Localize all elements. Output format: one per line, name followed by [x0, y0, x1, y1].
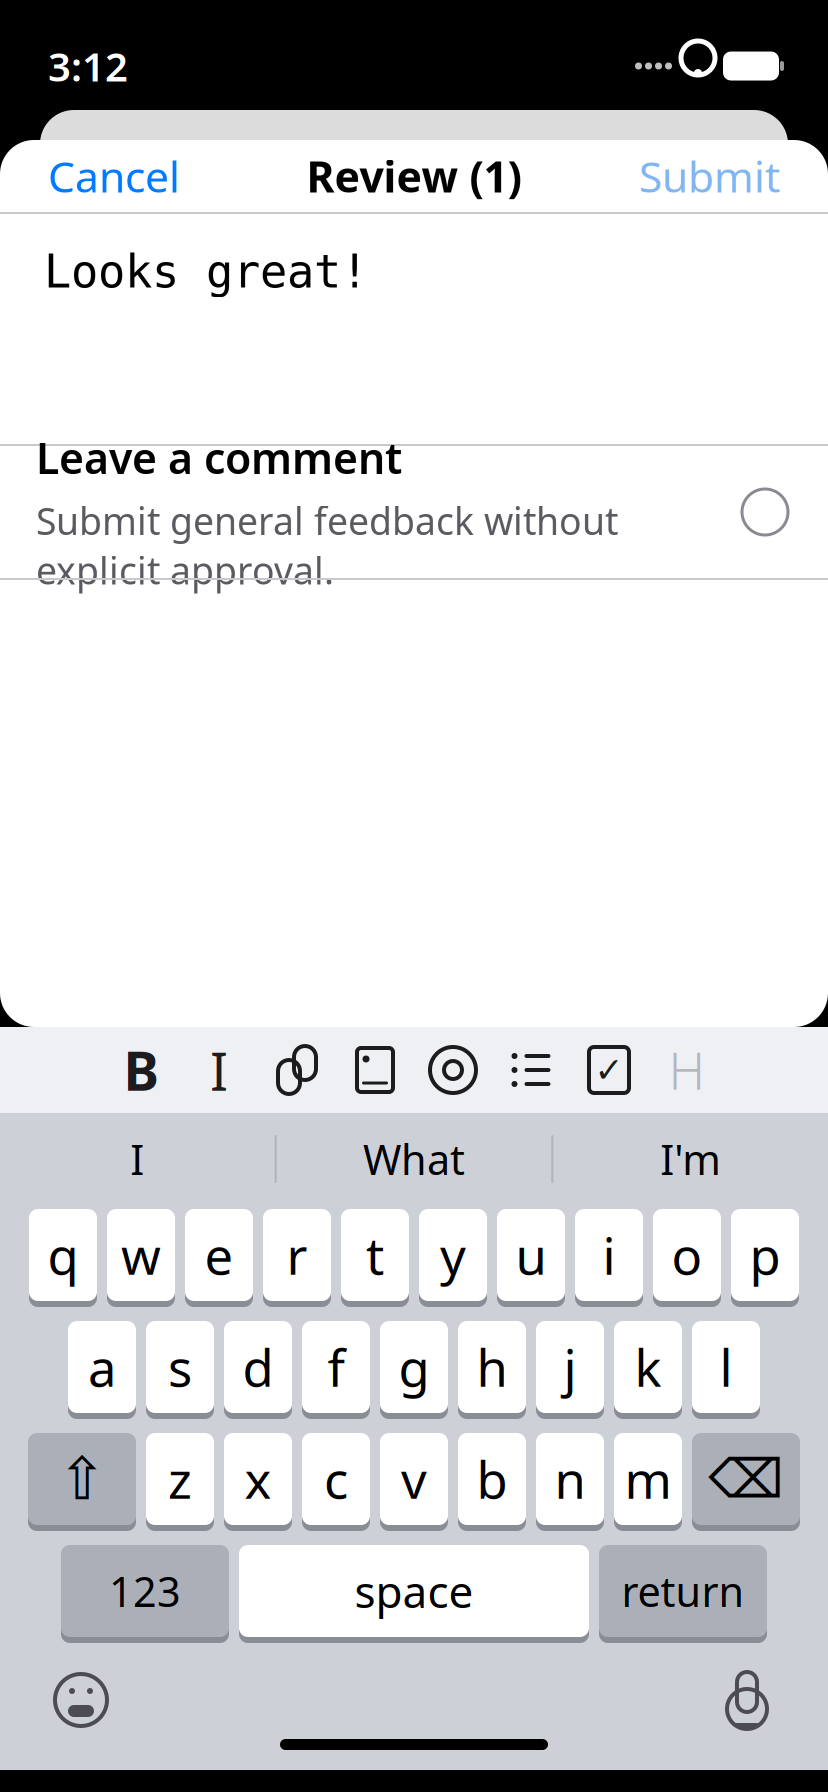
button[interactable]: q — [29, 1209, 97, 1307]
button[interactable]: Cancel — [36, 138, 192, 214]
button[interactable]: c — [302, 1433, 370, 1531]
staticText: I — [210, 1035, 228, 1105]
button[interactable]: s — [146, 1321, 214, 1419]
button[interactable]: Insert image — [336, 1027, 414, 1113]
button[interactable]: p — [731, 1209, 799, 1307]
button[interactable]: space — [239, 1545, 589, 1643]
button[interactable]: Heading — [648, 1027, 726, 1113]
button[interactable]: z — [146, 1433, 214, 1531]
staticText: x — [244, 1445, 271, 1513]
staticText: space — [354, 1562, 473, 1620]
button[interactable]: l — [692, 1321, 760, 1419]
button[interactable]: e — [185, 1209, 253, 1307]
staticText: q — [47, 1221, 78, 1289]
staticText: w — [121, 1221, 161, 1289]
staticText: H — [668, 1036, 705, 1104]
button[interactable]: a — [68, 1321, 136, 1419]
staticText: B — [123, 1035, 158, 1105]
staticText: Leave a comment — [36, 429, 402, 486]
staticText: return — [621, 1564, 744, 1618]
staticText: Review (1) — [306, 148, 521, 204]
button[interactable]: n — [536, 1433, 604, 1531]
staticText: Looks great! — [44, 246, 368, 297]
staticText: r — [286, 1221, 307, 1289]
button[interactable]: h — [458, 1321, 526, 1419]
staticText: v — [401, 1445, 427, 1513]
staticText: e — [204, 1221, 233, 1289]
staticText: z — [168, 1445, 192, 1513]
staticText: ✓ — [594, 1050, 623, 1090]
button[interactable]: Italic — [180, 1027, 258, 1113]
staticText: What — [363, 1132, 465, 1186]
button[interactable]: Shift — [28, 1433, 136, 1531]
button[interactable]: y — [419, 1209, 487, 1307]
staticText: 3:12 — [48, 39, 128, 92]
button[interactable]: Mention — [414, 1027, 492, 1113]
button[interactable]: 123 — [61, 1545, 229, 1643]
staticText: y — [440, 1221, 466, 1289]
staticText: Submit general feedback without explicit… — [36, 496, 618, 595]
staticText: I'm — [660, 1132, 721, 1186]
button[interactable]: Bulleted list — [492, 1027, 570, 1113]
staticText: 123 — [109, 1564, 181, 1618]
staticText: a — [88, 1333, 116, 1401]
staticText: k — [634, 1333, 661, 1401]
button[interactable]: return — [599, 1545, 767, 1643]
button[interactable]: x — [224, 1433, 292, 1531]
staticText: l — [719, 1333, 732, 1401]
staticText: j — [563, 1333, 576, 1401]
staticText: ⇧ — [57, 1446, 106, 1512]
button[interactable]: d — [224, 1321, 292, 1419]
staticText: d — [242, 1333, 273, 1401]
button[interactable]: i — [575, 1209, 643, 1307]
button[interactable]: Bold — [102, 1027, 180, 1113]
staticText: g — [398, 1333, 429, 1401]
button[interactable]: o — [653, 1209, 721, 1307]
staticText: c — [324, 1445, 348, 1513]
button[interactable]: m — [614, 1433, 682, 1531]
button[interactable]: u — [497, 1209, 565, 1307]
staticText: t — [366, 1221, 384, 1289]
button[interactable]: Delete — [692, 1433, 800, 1531]
staticText: ⌫ — [708, 1449, 783, 1509]
button[interactable]: j — [536, 1321, 604, 1419]
button[interactable]: Insert link — [258, 1027, 336, 1113]
button[interactable]: Emoji keyboard — [40, 1671, 122, 1729]
button[interactable]: I'm — [553, 1113, 828, 1205]
button[interactable]: Leave a comment — [0, 446, 828, 578]
button[interactable]: I — [0, 1113, 275, 1205]
staticText: f — [327, 1333, 344, 1401]
button[interactable]: g — [380, 1321, 448, 1419]
staticText: I — [130, 1132, 144, 1186]
button[interactable]: b — [458, 1433, 526, 1531]
staticText: n — [554, 1445, 585, 1513]
staticText: o — [671, 1221, 702, 1289]
staticText: i — [602, 1221, 615, 1289]
button[interactable]: Task list — [570, 1027, 648, 1113]
button[interactable]: k — [614, 1321, 682, 1419]
button[interactable]: Submit — [627, 138, 792, 214]
staticText: u — [515, 1221, 546, 1289]
staticText: h — [476, 1333, 507, 1401]
staticText: p — [749, 1221, 780, 1289]
button[interactable]: v — [380, 1433, 448, 1531]
staticText: m — [624, 1445, 671, 1513]
button[interactable]: f — [302, 1321, 370, 1419]
button[interactable]: r — [263, 1209, 331, 1307]
staticText: Submit — [639, 148, 780, 204]
button[interactable]: Dictation — [706, 1669, 788, 1731]
staticText: Cancel — [48, 148, 180, 204]
button[interactable]: w — [107, 1209, 175, 1307]
button[interactable]: t — [341, 1209, 409, 1307]
button[interactable]: What — [277, 1113, 551, 1205]
staticText: b — [476, 1445, 507, 1513]
staticText: s — [168, 1333, 192, 1401]
